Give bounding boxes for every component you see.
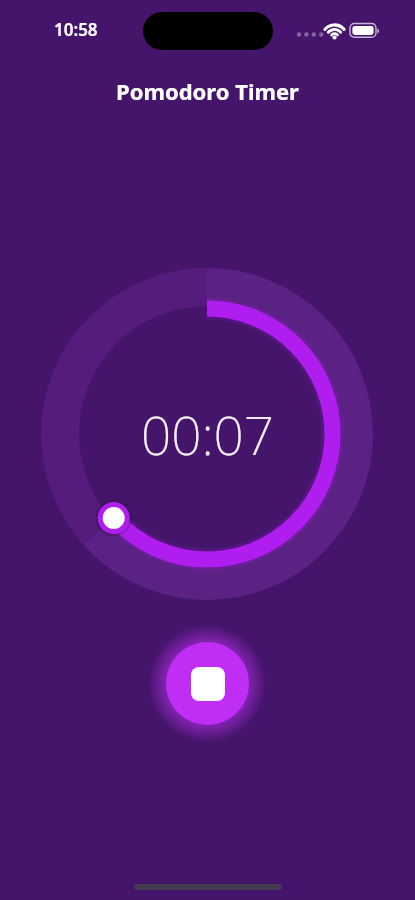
staticText: 00:07 [141,398,275,470]
staticText: Pomodoro Timer [0,76,415,106]
staticText: 10:58 [54,18,98,41]
button[interactable] [166,642,249,725]
